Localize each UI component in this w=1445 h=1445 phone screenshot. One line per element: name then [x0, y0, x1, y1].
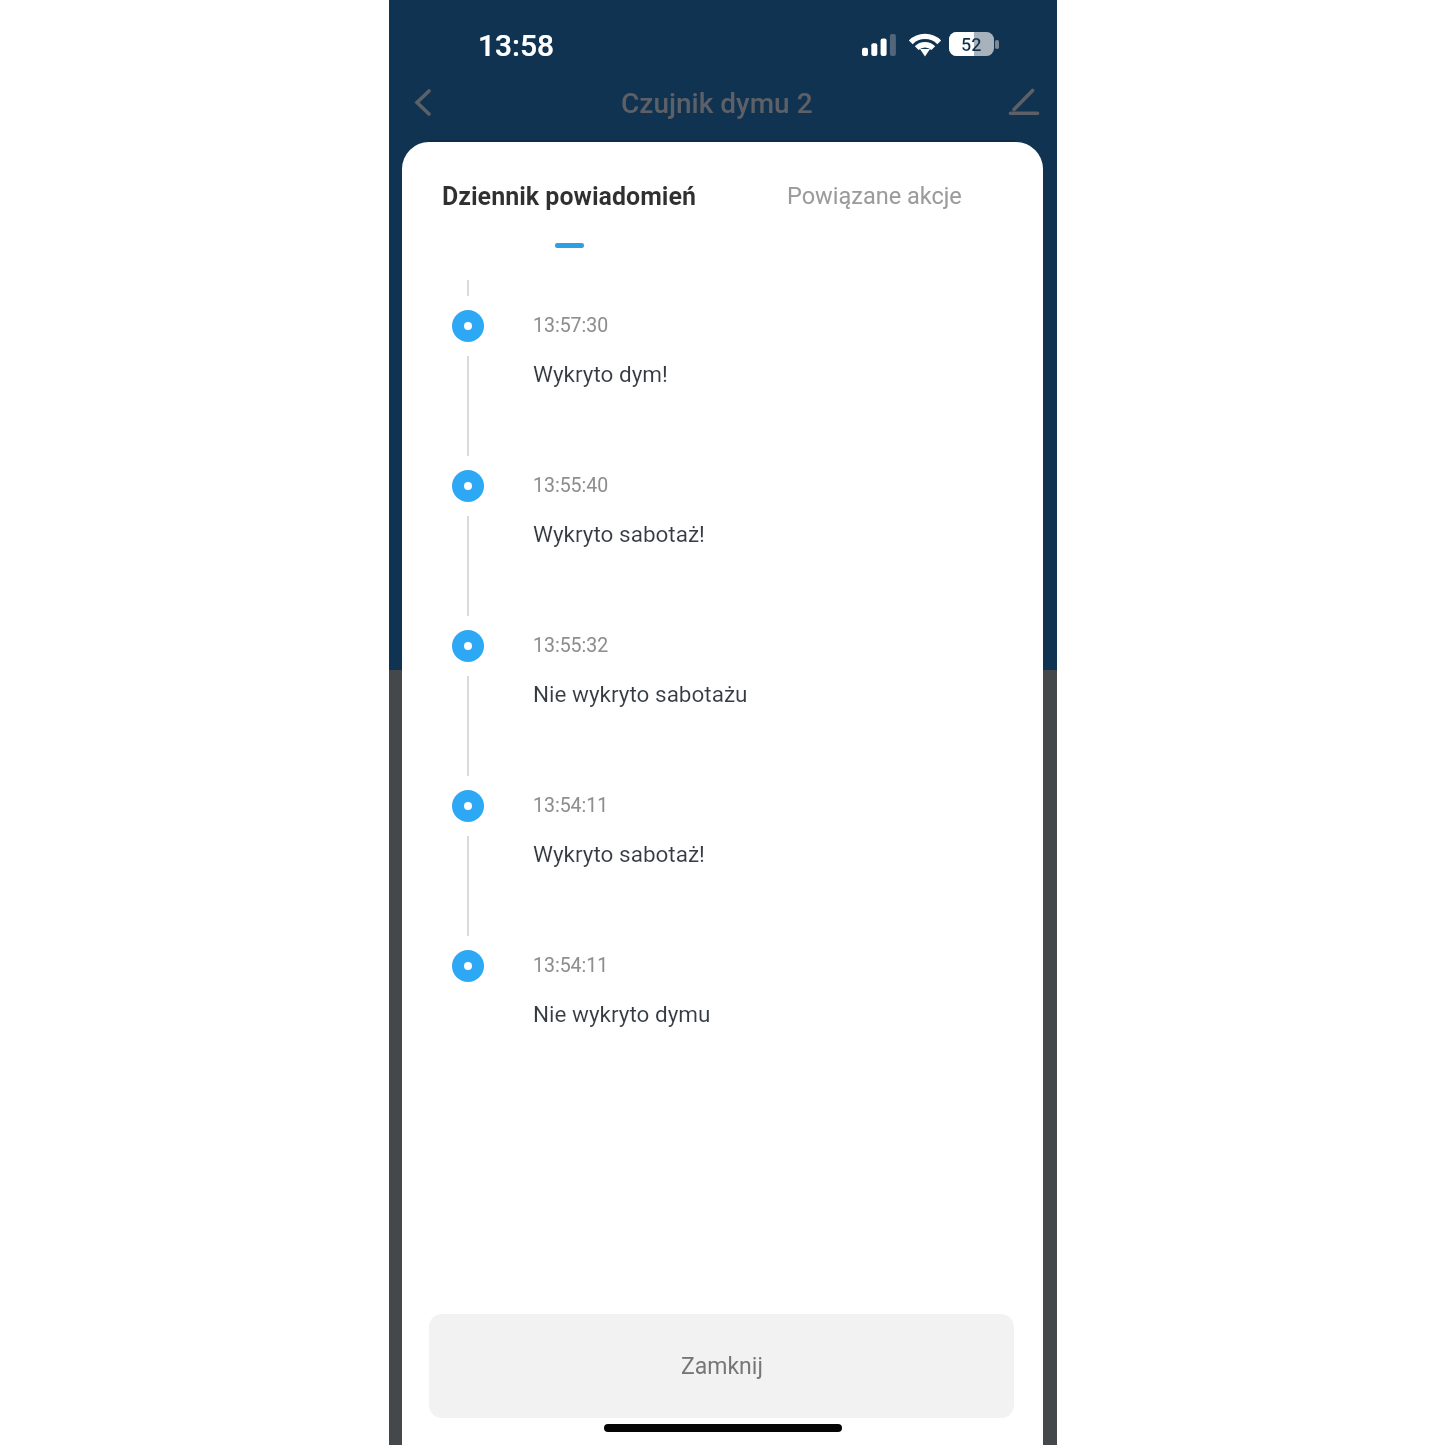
staticText: Czujnik dymu 2 — [621, 87, 813, 120]
staticText: Wykryto sabotaż! — [533, 841, 705, 867]
staticText: 52 — [961, 34, 982, 55]
staticText: 13:55:32 — [533, 634, 609, 657]
button[interactable]: Zamknij — [429, 1314, 1014, 1418]
staticText: Powiązane akcje — [787, 182, 962, 210]
staticText: Dziennik powiadomień — [442, 182, 696, 211]
button[interactable]: 13:55:40 — [432, 458, 1043, 608]
staticText: 13:55:40 — [533, 474, 609, 497]
button[interactable]: 13:57:30 — [432, 298, 1043, 448]
staticText: 13:58 — [478, 28, 555, 63]
staticText: Zamknij — [681, 1353, 763, 1380]
button[interactable]: 13:54:11 — [432, 938, 1043, 1088]
button[interactable]: Dziennik powiadomień — [438, 170, 696, 252]
staticText: Wykryto dym! — [533, 361, 668, 387]
button[interactable]: Edit — [996, 74, 1052, 130]
staticText: 13:54:11 — [533, 794, 609, 817]
staticText: Nie wykryto dymu — [533, 1001, 711, 1027]
staticText: 13:57:30 — [533, 314, 609, 337]
button[interactable]: Back — [393, 74, 449, 130]
button[interactable]: 13:54:11 — [432, 778, 1043, 928]
staticText: Wykryto sabotaż! — [533, 521, 705, 547]
button[interactable]: 13:55:32 — [432, 618, 1043, 768]
staticText: 13:54:11 — [533, 954, 609, 977]
staticText: Nie wykryto sabotażu — [533, 681, 748, 707]
button[interactable]: Powiązane akcje — [704, 170, 1043, 252]
